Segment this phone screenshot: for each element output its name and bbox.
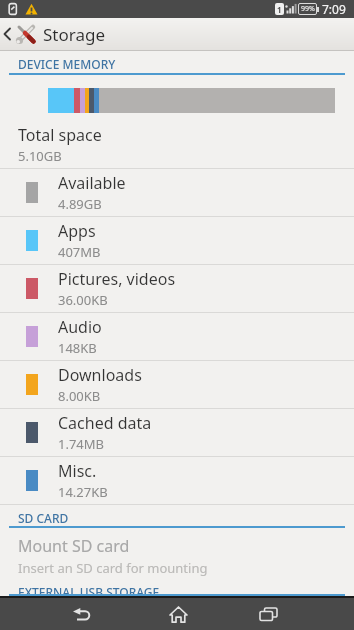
staticText: 5.10GB <box>18 147 62 165</box>
button[interactable]: Pictures, videos <box>0 265 354 313</box>
staticText: 99% <box>301 4 315 14</box>
staticText: 1.74MB <box>58 435 105 453</box>
button[interactable] <box>154 598 202 630</box>
button[interactable]: Mount SD card <box>18 535 354 577</box>
staticText: Misc. <box>58 460 97 482</box>
button[interactable]: Storage <box>0 18 106 50</box>
staticText: Mount SD card <box>18 535 130 557</box>
staticText: Available <box>58 172 126 194</box>
button[interactable]: Downloads <box>0 361 354 409</box>
staticText: DEVICE MEMORY <box>18 56 116 72</box>
staticText: Pictures, videos <box>58 268 176 290</box>
staticText: Cached data <box>58 412 152 434</box>
button[interactable]: Misc. <box>0 457 354 505</box>
staticText: Total space <box>18 124 102 146</box>
staticText: Downloads <box>58 364 142 386</box>
staticText: 4.89GB <box>58 195 102 213</box>
staticText: Insert an SD card for mounting <box>18 559 208 577</box>
button[interactable]: Apps <box>0 217 354 265</box>
button[interactable] <box>244 598 292 630</box>
staticText: Audio <box>58 316 102 338</box>
staticText: 148KB <box>58 339 97 357</box>
staticText: 7:09 <box>322 1 346 17</box>
staticText: 1 <box>277 4 282 15</box>
button[interactable] <box>58 598 106 630</box>
staticText: 407MB <box>58 243 101 261</box>
staticText: Apps <box>58 220 96 242</box>
button[interactable]: Cached data <box>0 409 354 457</box>
staticText: 14.27KB <box>58 483 108 501</box>
staticText: Storage <box>43 23 106 46</box>
button[interactable]: Total space <box>0 121 354 169</box>
staticText: SD CARD <box>18 510 69 526</box>
button[interactable]: Audio <box>0 313 354 361</box>
staticText: EXTERNAL USB STORAGE <box>18 584 160 596</box>
staticText: 36.00KB <box>58 291 108 309</box>
button[interactable]: Available <box>0 169 354 217</box>
staticText: 8.00KB <box>58 387 101 405</box>
